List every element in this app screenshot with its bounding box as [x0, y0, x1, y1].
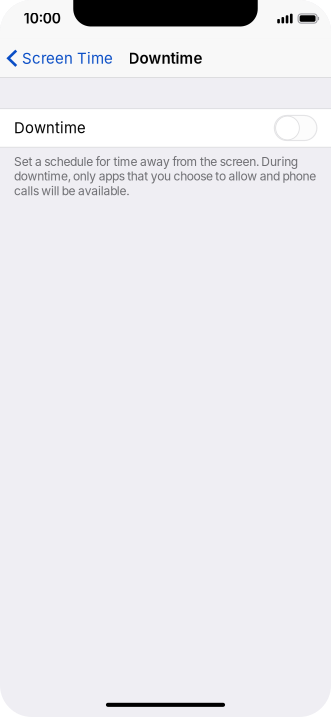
- staticText: Set a schedule for time away from the sc…: [14, 154, 316, 198]
- staticText: Downtime: [14, 119, 86, 137]
- button[interactable]: Screen Time: [0, 43, 118, 73]
- staticText: Screen Time: [22, 49, 113, 67]
- button[interactable]: Downtime: [0, 109, 331, 147]
- staticText: 10:00: [24, 10, 61, 27]
- staticText: Downtime: [128, 49, 202, 67]
